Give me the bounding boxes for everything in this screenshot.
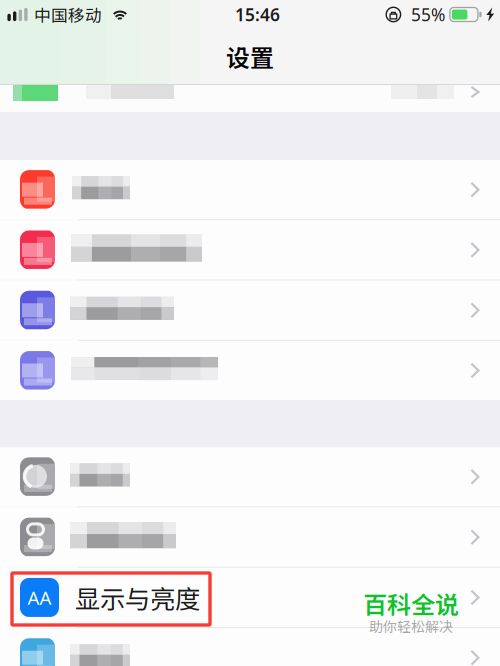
button[interactable] bbox=[0, 447, 500, 506]
button[interactable] bbox=[0, 341, 500, 400]
button[interactable] bbox=[0, 220, 500, 280]
staticText: 助你轻松解决 bbox=[369, 616, 453, 636]
button[interactable]: AA bbox=[0, 568, 500, 627]
staticText: 显示与亮度 bbox=[75, 579, 200, 616]
staticText: 55% bbox=[411, 3, 445, 26]
button[interactable] bbox=[0, 507, 500, 567]
button[interactable] bbox=[0, 85, 500, 112]
staticText: 中国移动 bbox=[34, 2, 102, 26]
button[interactable] bbox=[0, 160, 500, 219]
staticText: AA bbox=[27, 585, 51, 610]
button[interactable] bbox=[0, 281, 500, 340]
button[interactable] bbox=[0, 628, 500, 666]
staticText: 百科全说 bbox=[363, 586, 459, 621]
staticText: 15:46 bbox=[235, 3, 280, 26]
staticText: 设置 bbox=[226, 39, 274, 74]
